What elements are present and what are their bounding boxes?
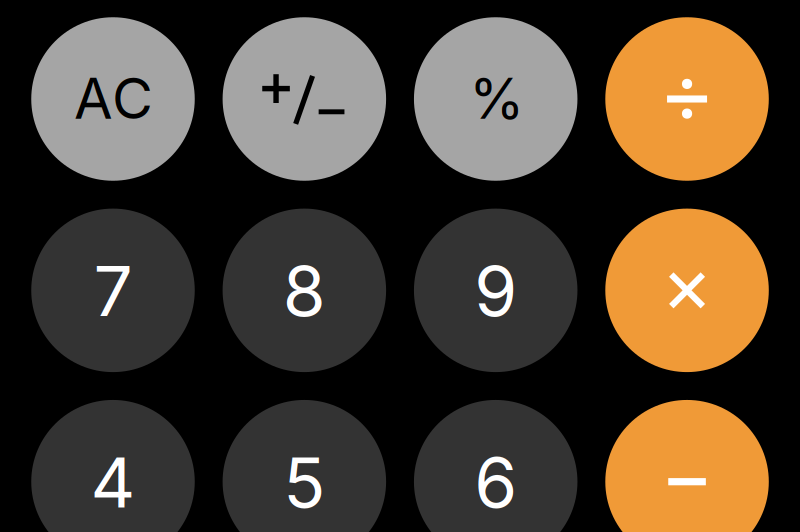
staticText: 4 xyxy=(90,440,135,524)
button[interactable]: 8 xyxy=(223,209,386,372)
staticText: 6 xyxy=(474,440,517,524)
button[interactable]: 6 xyxy=(414,400,577,532)
staticText: 7 xyxy=(93,249,132,333)
staticText: 8 xyxy=(283,249,326,333)
staticText: AC xyxy=(74,65,153,132)
button[interactable]: 4 xyxy=(31,400,195,532)
button[interactable]: 5 xyxy=(223,400,386,532)
button[interactable]: % xyxy=(414,17,577,181)
button[interactable]: 7 xyxy=(31,209,195,372)
staticText: % xyxy=(469,65,524,132)
button[interactable]: Minus xyxy=(605,400,769,532)
button[interactable]: Plus minus xyxy=(223,17,386,181)
button[interactable]: AC xyxy=(31,17,195,181)
button[interactable]: Multiply xyxy=(605,209,769,372)
staticText: 5 xyxy=(283,440,325,524)
staticText: 9 xyxy=(474,249,517,333)
button[interactable]: 9 xyxy=(414,209,577,372)
button[interactable]: Divide xyxy=(605,17,769,181)
